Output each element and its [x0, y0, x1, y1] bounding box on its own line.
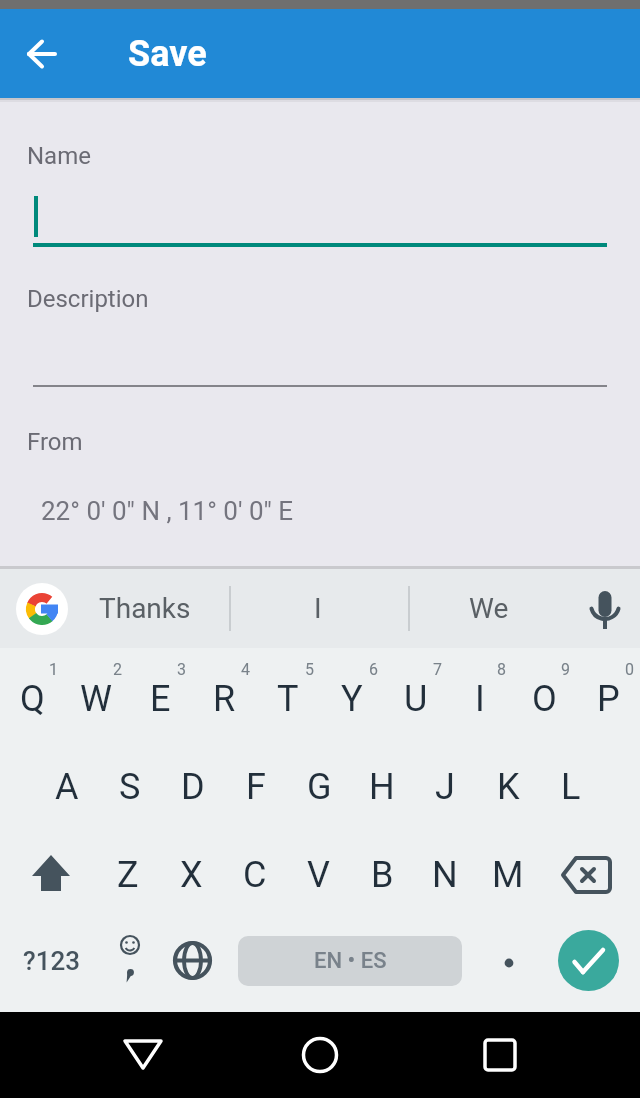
button[interactable]: EN • ES	[238, 936, 462, 986]
staticText: A	[55, 766, 79, 808]
staticText: Z	[117, 854, 139, 896]
button[interactable]: ?123	[0, 0, 100, 60]
staticText: 5	[305, 660, 314, 679]
button[interactable]: K	[476, 741, 540, 832]
button[interactable]	[16, 583, 68, 635]
button[interactable]: D	[161, 741, 225, 832]
staticText: 0	[625, 660, 634, 679]
button[interactable]: T	[256, 653, 320, 744]
staticText: H	[369, 766, 395, 808]
button[interactable]: I	[258, 569, 378, 648]
staticText: 2	[113, 660, 122, 679]
staticText: I	[475, 678, 485, 720]
staticText: J	[435, 766, 455, 808]
button[interactable]: M	[476, 829, 540, 920]
button[interactable]: R	[192, 653, 256, 744]
staticText: From	[27, 428, 83, 456]
button[interactable]	[33, 180, 607, 250]
staticText: V	[307, 854, 330, 896]
staticText: 22° 0' 0" N , 11° 0' 0" E	[41, 496, 294, 526]
staticText: L	[561, 766, 581, 808]
staticText: N	[432, 854, 458, 896]
staticText: Q	[20, 678, 45, 720]
staticText: W	[80, 678, 112, 720]
staticText: Y	[341, 678, 363, 720]
staticText: Save	[128, 33, 207, 75]
staticText: R	[213, 678, 236, 720]
staticText: X	[180, 854, 203, 896]
staticText: 9	[561, 660, 570, 679]
button[interactable]: B	[350, 829, 414, 920]
staticText: Name	[27, 142, 91, 170]
button[interactable]	[98, 920, 162, 1005]
staticText: U	[404, 678, 428, 720]
button[interactable]	[103, 1015, 183, 1095]
staticText: S	[119, 766, 141, 808]
staticText: M	[492, 854, 524, 896]
button[interactable]	[280, 1015, 360, 1095]
staticText: 1	[49, 660, 58, 679]
button[interactable]: We	[429, 569, 549, 648]
button[interactable]: Thanks	[80, 569, 210, 648]
staticText: ?123	[23, 946, 80, 976]
button[interactable]: C	[223, 829, 287, 920]
button[interactable]: N	[413, 829, 477, 920]
button[interactable]: L	[539, 741, 603, 832]
button[interactable]: V	[286, 829, 350, 920]
button[interactable]: A	[35, 741, 99, 832]
staticText: 3	[177, 660, 186, 679]
staticText: B	[371, 854, 394, 896]
staticText: 6	[369, 660, 378, 679]
staticText: K	[497, 766, 520, 808]
staticText: T	[277, 678, 299, 720]
button[interactable]: I	[448, 653, 512, 744]
staticText: 7	[433, 660, 442, 679]
button[interactable]	[160, 928, 225, 993]
button[interactable]	[14, 26, 70, 82]
staticText: 8	[497, 660, 506, 679]
button[interactable]	[552, 839, 624, 911]
staticText: G	[307, 766, 332, 808]
button[interactable]	[482, 934, 536, 988]
button[interactable]: E	[128, 653, 192, 744]
staticText: 4	[241, 660, 250, 679]
button[interactable]: W	[64, 653, 128, 744]
button[interactable]: F	[224, 741, 288, 832]
staticText: EN • ES	[314, 948, 387, 974]
staticText: O	[532, 678, 557, 720]
button[interactable]	[14, 839, 86, 911]
staticText: C	[243, 854, 267, 896]
staticText: P	[597, 678, 620, 720]
button[interactable]: Z	[96, 829, 160, 920]
staticText: F	[246, 766, 266, 808]
button[interactable]	[558, 930, 619, 991]
button[interactable]: J	[413, 741, 477, 832]
button[interactable]	[460, 1015, 540, 1095]
button[interactable]: Y	[320, 653, 384, 744]
button[interactable]: U	[384, 653, 448, 744]
staticText: I	[314, 592, 322, 625]
staticText: Description	[27, 285, 149, 313]
button[interactable]: X	[159, 829, 223, 920]
staticText: E	[150, 678, 171, 720]
button[interactable]: P	[576, 653, 640, 744]
button[interactable]	[577, 581, 633, 637]
button[interactable]	[33, 330, 607, 388]
staticText: D	[181, 766, 205, 808]
staticText: We	[469, 592, 509, 625]
button[interactable]: G	[287, 741, 351, 832]
button[interactable]: H	[350, 741, 414, 832]
button[interactable]: O	[512, 653, 576, 744]
staticText: Thanks	[99, 592, 191, 625]
button[interactable]: S	[98, 741, 162, 832]
button[interactable]: Q	[0, 653, 64, 744]
